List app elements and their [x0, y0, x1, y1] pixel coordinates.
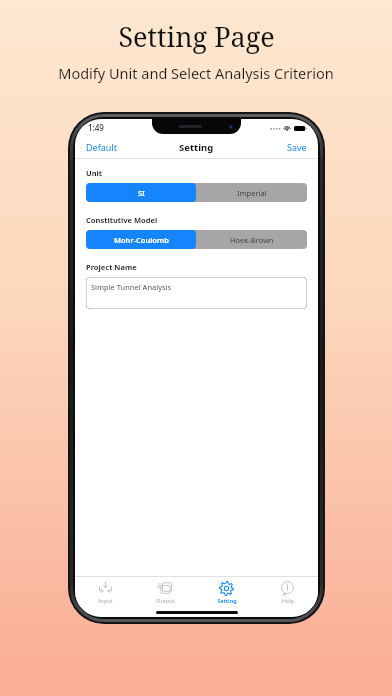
staticText: Unit [86, 168, 103, 178]
button[interactable]: Setting [196, 577, 257, 608]
button[interactable]: Mohr-Coulomb [86, 230, 196, 249]
button[interactable]: Simple Tunnel Analysis [86, 277, 307, 309]
staticText: Constitutive Model [86, 215, 158, 225]
button[interactable]: Output [135, 577, 196, 608]
button[interactable]: Default [75, 138, 128, 156]
staticText: Imperial [237, 188, 267, 198]
staticText: Setting Page [118, 18, 275, 55]
button[interactable]: Hoek-Brown [196, 230, 307, 249]
button[interactable]: SI [86, 183, 196, 202]
staticText: Project Name [86, 262, 137, 272]
staticText: Setting [179, 141, 214, 154]
staticText: Modify Unit and Select Analysis Criterio… [58, 63, 334, 83]
staticText: SI [138, 188, 145, 198]
staticText: Setting [217, 597, 237, 604]
staticText: Simple Tunnel Analysis [91, 282, 172, 292]
staticText: Help [282, 597, 294, 604]
button[interactable]: Save [276, 138, 318, 156]
staticText: Hoek-Brown [230, 235, 274, 245]
button[interactable]: Imperial [196, 183, 307, 202]
button[interactable]: Help [257, 577, 318, 608]
staticText: 1:49 [88, 122, 104, 133]
staticText: Output [156, 597, 175, 604]
staticText: Input [98, 597, 113, 604]
button[interactable]: Input [75, 577, 135, 608]
staticText: Mohr-Coulomb [114, 235, 169, 245]
